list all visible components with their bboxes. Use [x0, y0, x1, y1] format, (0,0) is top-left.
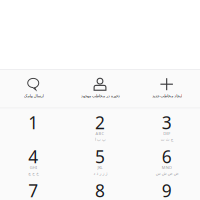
staticText: 2 [95, 111, 105, 134]
button[interactable]: ایجاد مخاطب جدید [133, 70, 200, 108]
button[interactable]: 5 [67, 142, 133, 176]
staticText: ژ ز ر ذ د [93, 171, 107, 176]
button[interactable]: 9 [133, 176, 200, 200]
button[interactable]: 2 [67, 108, 133, 142]
staticText: خ ح چ [28, 171, 39, 176]
button[interactable]: ارسال پیامک [0, 70, 67, 108]
staticText: پ ب ا [94, 137, 105, 142]
staticText: 3 [162, 111, 172, 134]
staticText: ذخیره در مخاطب موجود [80, 94, 119, 98]
staticText: GHI [30, 165, 37, 170]
staticText: DEF [163, 131, 170, 136]
staticText: 9 [162, 179, 172, 200]
button[interactable]: 7 [0, 176, 67, 200]
button[interactable]: 3 [133, 108, 200, 142]
staticText: ج ث ت [160, 137, 173, 142]
staticText: 7 [28, 179, 38, 200]
staticText: ض ص ش س [155, 171, 178, 176]
staticText: 4 [28, 145, 38, 168]
staticText: ارسال پیامک [23, 94, 43, 98]
staticText: 1 [28, 111, 38, 134]
staticText: 8 [95, 179, 105, 200]
button[interactable]: 6 [133, 142, 200, 176]
staticText: 5 [95, 145, 105, 168]
button[interactable]: 8 [67, 176, 133, 200]
button[interactable]: 1 [0, 108, 67, 142]
button[interactable]: ذخیره در مخاطب موجود [67, 70, 133, 108]
staticText: ABC [95, 131, 104, 136]
staticText: ایجاد مخاطب جدید [152, 94, 182, 98]
staticText: 6 [162, 145, 172, 168]
staticText: JKL [97, 165, 102, 170]
button[interactable]: 4 [0, 142, 67, 176]
staticText: MNO [162, 165, 172, 170]
